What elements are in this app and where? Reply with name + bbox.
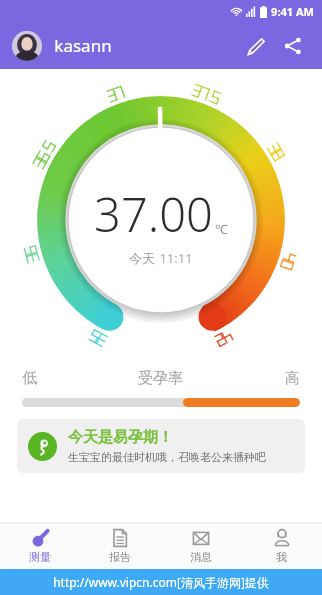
button[interactable]: Temperature gauge 37.00 degrees — [28, 87, 294, 353]
button[interactable]: 消息 — [160, 523, 241, 569]
staticText: 报告 — [109, 550, 131, 564]
staticText: 今天 — [129, 250, 155, 266]
staticText: http://www.vipcn.com[清风手游网]提供 — [53, 574, 269, 590]
button[interactable]: 我 — [241, 523, 322, 569]
button[interactable]: Fertility level — [22, 398, 300, 407]
staticText: ℃ — [215, 220, 228, 238]
staticText: 测量 — [29, 550, 51, 564]
staticText: 9:41 AM — [271, 4, 314, 19]
button[interactable]: 今天是易孕期！ — [17, 419, 305, 473]
staticText: 消息 — [190, 550, 212, 564]
staticText: 受孕率 — [138, 369, 183, 388]
staticText: 生宝宝的最佳时机哦，召唤老公来播种吧 — [68, 450, 266, 464]
staticText: 37.00 — [94, 182, 213, 246]
button[interactable] — [12, 31, 42, 61]
staticText: 高 — [285, 369, 300, 388]
staticText: 我 — [276, 550, 287, 564]
button[interactable]: 测量 — [0, 523, 80, 569]
staticText: 低 — [22, 369, 37, 388]
button[interactable]: Edit — [238, 29, 272, 63]
button[interactable]: Share — [276, 29, 310, 63]
button[interactable]: 报告 — [80, 523, 160, 569]
staticText: 11:11 — [159, 249, 193, 267]
staticText: 今天是易孕期！ — [68, 428, 173, 447]
staticText: kasann — [54, 34, 112, 57]
